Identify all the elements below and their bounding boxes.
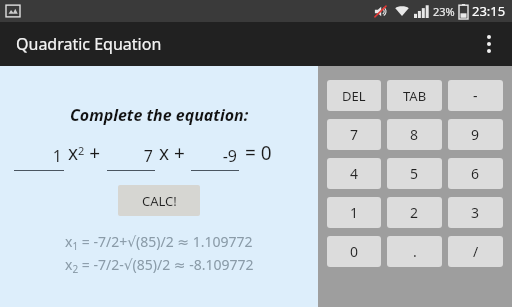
staticText: DEL (342, 87, 366, 105)
staticText: x2 + (68, 140, 101, 166)
button[interactable]: -9 (191, 145, 239, 171)
button[interactable]: 1 (327, 197, 381, 228)
staticText: Complete the equation: (70, 104, 249, 126)
staticText: 23% (433, 4, 455, 19)
staticText: 4 (350, 164, 359, 183)
staticText: CALC! (142, 192, 177, 210)
staticText: 3 (471, 203, 480, 222)
staticText: 7 (143, 145, 153, 167)
staticText: -9 (222, 145, 237, 167)
staticText: / (473, 242, 479, 261)
staticText: 8 (410, 125, 419, 144)
button[interactable]: 7 (107, 145, 155, 171)
button[interactable]: CALC! (118, 185, 200, 216)
staticText: 9 (471, 125, 480, 144)
button[interactable]: More options (466, 22, 512, 66)
staticText: TAB (403, 87, 427, 105)
staticText: 23:15 (472, 2, 506, 20)
button[interactable]: 9 (448, 119, 503, 150)
staticText: x + (159, 140, 185, 166)
staticText: 0 (350, 242, 359, 261)
button[interactable]: 2 (387, 197, 442, 228)
staticText: = 0 (245, 140, 272, 166)
staticText: . (413, 242, 417, 261)
button[interactable]: 0 (327, 236, 381, 267)
button[interactable]: 8 (387, 119, 442, 150)
staticText: 6 (471, 164, 480, 183)
staticText: - (473, 86, 478, 105)
button[interactable]: - (448, 80, 503, 111)
button[interactable]: 3 (448, 197, 503, 228)
staticText: x1 = -7/2+√(85)/2 ≈ 1.109772 (65, 232, 253, 253)
staticText: 7 (350, 125, 359, 144)
button[interactable]: . (387, 236, 442, 267)
staticText: 5 (410, 164, 419, 183)
button[interactable]: DEL (327, 80, 381, 111)
button[interactable]: 4 (327, 158, 381, 189)
staticText: 2 (410, 203, 419, 222)
button[interactable]: 6 (448, 158, 503, 189)
staticText: 1 (350, 203, 359, 222)
staticText: Quadratic Equation (16, 33, 162, 55)
button[interactable]: / (448, 236, 503, 267)
button[interactable]: 7 (327, 119, 381, 150)
staticText: x2 = -7/2-√(85)/2 ≈ -8.109772 (65, 255, 254, 276)
button[interactable]: 5 (387, 158, 442, 189)
button[interactable]: TAB (387, 80, 442, 111)
staticText: 1 (52, 145, 62, 167)
button[interactable]: 1 (14, 145, 64, 171)
